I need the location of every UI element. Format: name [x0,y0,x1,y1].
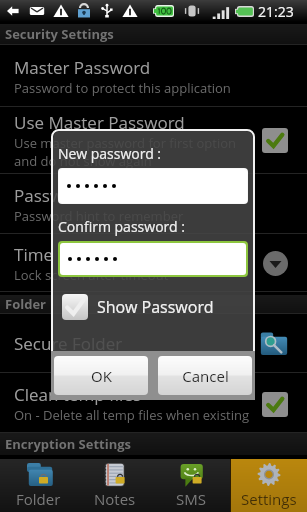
staticText: Folder [5,295,46,313]
button[interactable]: Time out [0,234,307,292]
staticText: Show Password [97,296,214,318]
staticText: Cancel [182,366,229,386]
button[interactable]: SMS [153,459,230,512]
button[interactable]: Cancel [158,356,252,395]
staticText: New password : [58,144,162,163]
button[interactable]: Secure Folder [0,314,307,373]
staticText: Password Hint [14,184,129,207]
button[interactable]: Password Hint [0,174,307,234]
staticText: Lock screen after timeout [14,266,169,284]
button[interactable]: Notes [76,459,153,512]
button[interactable]: Clean temp files [0,374,307,433]
staticText: Settings [241,489,297,509]
staticText: Password hint to remember [14,207,184,225]
staticText: SMS [176,489,207,509]
button[interactable]: Browse folder [260,331,288,357]
staticText: Master Password [14,56,151,79]
staticText: OK [91,366,112,386]
button[interactable]: Folder [0,459,76,512]
button[interactable]: Show Password [58,294,214,320]
button[interactable]: OK [54,356,148,395]
staticText: Folder [16,489,61,509]
button[interactable]: Settings [230,459,307,512]
staticText: Password to protect this application [14,79,231,97]
button[interactable]: Use Master Password [0,107,307,174]
staticText: Use Master Password [14,111,185,134]
staticText: On - Delete all temp files when existing [14,406,250,424]
button[interactable]: Toggle setting [262,392,288,417]
staticText: Use master password for first option [14,134,237,152]
staticText: 21:23 [258,2,294,21]
button[interactable]: Master Password [0,45,307,107]
staticText: Confirm password : [58,217,185,236]
staticText: Security Settings [5,25,114,43]
button[interactable]: Open dropdown [263,251,288,276]
staticText: Time out [14,243,85,266]
button[interactable] [60,243,246,275]
staticText: Secure Folder [14,332,123,355]
staticText: and do not show again [14,152,152,170]
button[interactable]: Toggle setting [262,128,288,153]
staticText: Clean temp files [14,383,142,406]
staticText: Notes [94,489,136,509]
button[interactable] [59,169,247,203]
staticText: Encryption Settings [5,435,132,453]
